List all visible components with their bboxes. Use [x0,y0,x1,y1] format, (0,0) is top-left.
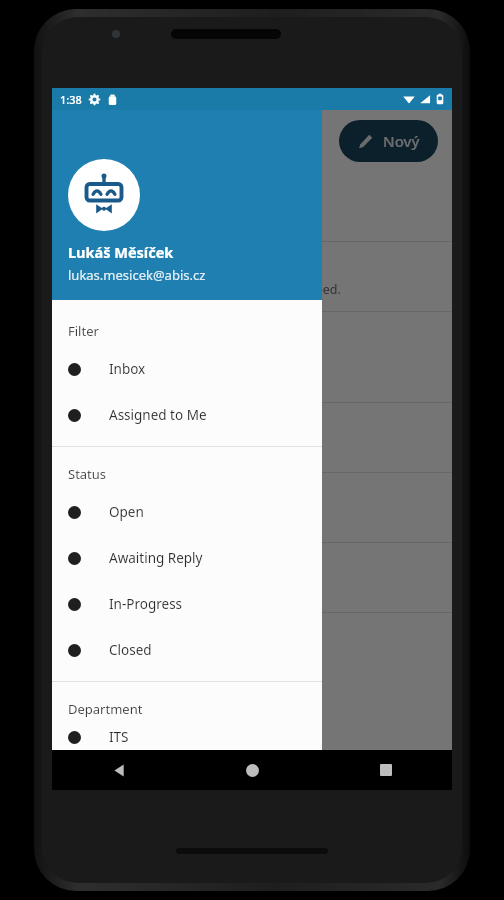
button[interactable]: Nový [339,120,438,162]
button[interactable]: Open [52,489,322,535]
staticText: Last report (#60428 [68,373,179,389]
button[interactable]: Email notifications delayed [52,473,452,542]
button[interactable]: Inbox [52,346,322,392]
button[interactable]: Export does not work when it's [52,312,452,402]
staticText: Backported from PR. Not sure how to proc… [68,281,341,298]
staticText: Filter [68,322,99,340]
staticText: Open [109,503,144,521]
staticText: Department [68,700,143,718]
staticText: Users report redirect loop when signing … [68,211,319,228]
button[interactable]: Back [52,750,186,790]
staticText: scheduled overnight [68,351,189,368]
button[interactable]: Cannot login with SSO on mobile [52,172,452,241]
button[interactable]: Recent apps [319,750,452,790]
other: Profile avatar [68,159,140,231]
staticText: Inbox [109,360,146,378]
staticText: Attachment preview blank [68,416,254,435]
button[interactable]: Dark theme contrast issue [52,543,452,612]
staticText: Dark theme contrast issue [68,556,253,575]
staticText: Queue backlog on worker node 3. [68,512,267,529]
button[interactable]: Closed [52,627,322,673]
staticText: In-Progress [109,595,183,613]
staticText: Status [68,465,107,483]
button[interactable]: Add support for oauth_methods [52,242,452,311]
staticText: Closed [109,641,152,659]
staticText: Add support for oauth_methods [68,255,291,274]
staticText: Secondary text unreadable. [68,582,229,599]
button[interactable]: In-Progress [52,581,322,627]
button[interactable]: Attachment preview blank [52,403,452,472]
staticText: 1:38 [60,92,82,107]
staticText: lukas.mesicek@abis.cz [68,266,206,284]
staticText: Cannot login with SSO on mobile [68,185,296,204]
staticText: Only for PDF files over 10 MB. [68,442,242,459]
staticText: Assigned to Me [109,406,207,424]
button[interactable]: Home [186,750,319,790]
staticText: Export does not work when it's [68,325,285,344]
button[interactable]: ITS [52,724,322,750]
staticText: Awaiting Reply [109,549,203,567]
button[interactable]: Awaiting Reply [52,535,322,581]
staticText: Nový [383,131,420,151]
staticText: Lukáš Měsíček [68,242,174,262]
button[interactable]: Assigned to Me [52,392,322,438]
staticText: ITS [109,728,129,746]
